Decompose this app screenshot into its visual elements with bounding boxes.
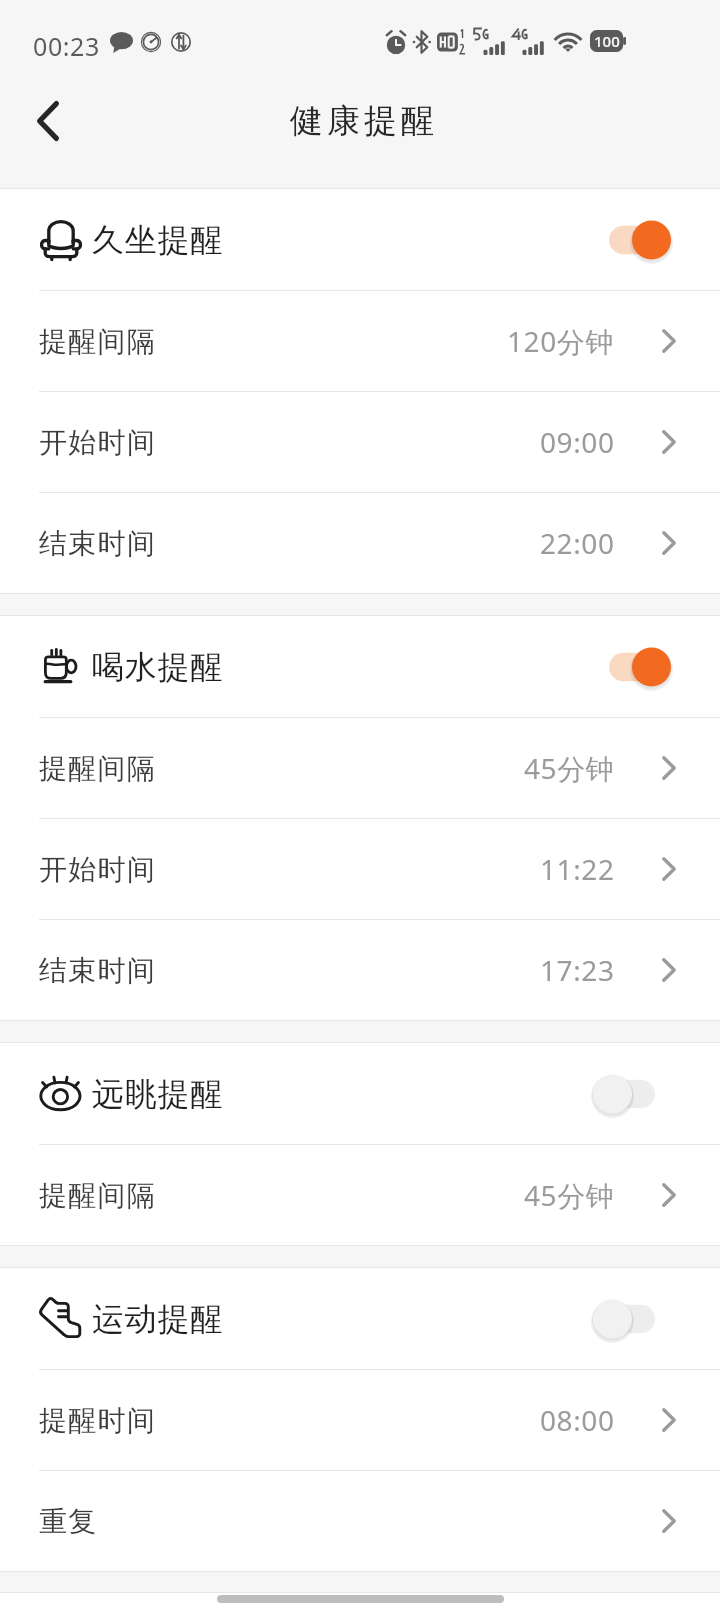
button[interactable]: Switch off (593, 1072, 671, 1116)
staticText: 00:23 (33, 29, 100, 63)
staticText: 远眺提醒 (92, 1074, 224, 1114)
staticText: 120分钟 (507, 322, 615, 360)
staticText: 运动提醒 (92, 1299, 224, 1339)
button[interactable]: Switch on (593, 218, 671, 262)
button[interactable]: 运动提醒 (0, 1268, 720, 1370)
button[interactable]: 提醒间隔 (0, 718, 720, 819)
button[interactable]: 提醒间隔 (0, 291, 720, 392)
button[interactable]: 喝水提醒 (0, 616, 720, 718)
staticText: 11:22 (540, 850, 615, 888)
staticText: 结束时间 (39, 526, 157, 561)
staticText: 08:00 (540, 1401, 615, 1439)
staticText: 17:23 (540, 951, 615, 989)
button[interactable]: 开始时间 (0, 819, 720, 920)
button[interactable]: Switch on (593, 645, 671, 689)
staticText: 重复 (39, 1504, 98, 1539)
staticText: 喝水提醒 (92, 647, 224, 687)
staticText: 开始时间 (39, 852, 157, 887)
staticText: 09:00 (540, 423, 615, 461)
staticText: 提醒间隔 (39, 751, 157, 786)
button[interactable]: Back (14, 86, 82, 156)
staticText: 45分钟 (524, 1176, 615, 1214)
button[interactable]: 久坐提醒 (0, 189, 720, 291)
button[interactable]: Switch off (593, 1297, 671, 1341)
button[interactable]: 远眺提醒 (0, 1043, 720, 1145)
button[interactable]: 提醒时间 (0, 1370, 720, 1471)
staticText: 100 (594, 31, 620, 51)
staticText: 健康提醒 (288, 100, 436, 142)
staticText: 提醒间隔 (39, 1178, 157, 1213)
staticText: 久坐提醒 (92, 220, 224, 260)
button[interactable]: 重复 (0, 1471, 720, 1571)
button[interactable]: 提醒间隔 (0, 1145, 720, 1245)
staticText: 提醒间隔 (39, 324, 157, 359)
staticText: 45分钟 (524, 749, 615, 787)
staticText: 22:00 (540, 524, 615, 562)
staticText: 开始时间 (39, 425, 157, 460)
button[interactable]: 结束时间 (0, 920, 720, 1020)
button[interactable]: 结束时间 (0, 493, 720, 593)
button[interactable]: 开始时间 (0, 392, 720, 493)
staticText: 提醒时间 (39, 1403, 157, 1438)
staticText: 结束时间 (39, 953, 157, 988)
